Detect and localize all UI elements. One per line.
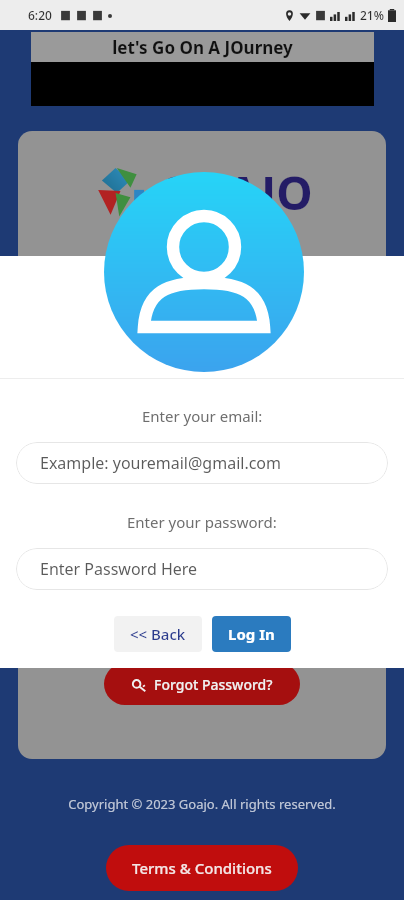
staticText: GOAJO — [158, 161, 313, 224]
button[interactable]: << Back — [114, 616, 202, 652]
staticText: Copyright © 2023 Goajo. All rights reser… — [68, 795, 336, 813]
button[interactable]: Forgot Password? — [104, 663, 300, 705]
button[interactable]: Terms & Conditions — [106, 845, 298, 891]
staticText: let's Go On A JOurney — [112, 36, 293, 59]
staticText: Example: youremail@gmail.com — [40, 452, 281, 474]
staticText: << Back — [130, 624, 186, 644]
staticText: 21% — [360, 7, 384, 23]
staticText: Terms & Conditions — [132, 858, 272, 878]
staticText: Forgot Password? — [154, 675, 273, 694]
button[interactable]: Example: youremail@gmail.com — [16, 442, 388, 484]
other: Profile avatar — [104, 172, 304, 372]
staticText: Enter your password: — [127, 512, 277, 532]
staticText: 6:20 — [28, 7, 52, 23]
staticText: Enter Password Here — [40, 558, 198, 580]
staticText: Enter your email: — [142, 406, 263, 426]
button[interactable]: Enter Password Here — [16, 548, 388, 590]
button[interactable]: Log In — [212, 616, 291, 652]
staticText: Log In — [228, 624, 275, 644]
